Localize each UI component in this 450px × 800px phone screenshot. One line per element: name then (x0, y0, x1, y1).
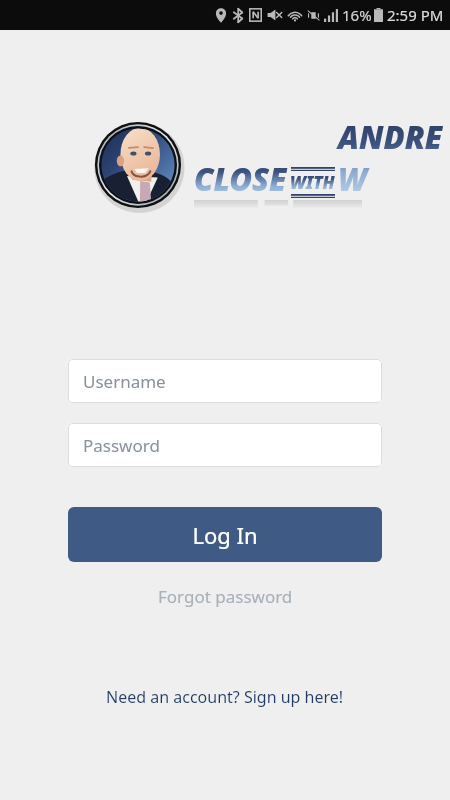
staticText: 16% (342, 5, 372, 25)
other: Profile logo (92, 119, 184, 211)
button[interactable]: Need an account? Sign up here! (0, 686, 450, 708)
button[interactable]: Log In (68, 507, 382, 562)
button[interactable]: Password (68, 423, 382, 467)
staticText: Need an account? Sign up here! (106, 686, 344, 708)
button[interactable]: Username (68, 359, 382, 403)
staticText: Username (83, 370, 166, 393)
staticText: Log In (192, 520, 258, 550)
button[interactable]: Forgot password (0, 585, 450, 608)
staticText: CLOSE (194, 158, 287, 200)
staticText: 2:59 PM (387, 5, 444, 25)
staticText: Forgot password (158, 585, 293, 608)
staticText: WITH (290, 171, 335, 194)
staticText: ANDREW (338, 116, 450, 200)
staticText: Password (83, 434, 160, 457)
